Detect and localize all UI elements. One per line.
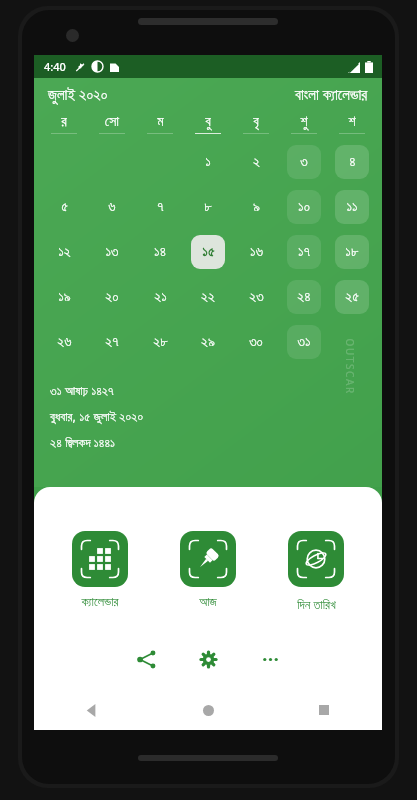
button[interactable]: ১৮ [335, 235, 369, 269]
staticText: ক্যালেন্ডার [81, 596, 119, 609]
staticText: ৬ [108, 200, 116, 214]
staticText: দিন তারিখ [297, 596, 336, 613]
staticText: ২৩ [249, 290, 264, 304]
button[interactable]: ২২ [191, 280, 225, 314]
staticText: ২৪ [297, 290, 311, 304]
button[interactable]: ২৯ [191, 325, 225, 359]
button[interactable]: Home [150, 690, 266, 730]
staticText: ২৮ [153, 335, 168, 349]
button[interactable]: ১৩ [95, 235, 129, 269]
button[interactable]: ৩ [287, 145, 321, 179]
staticText: আজ [199, 596, 217, 609]
staticText: জুলাই ২০২০ [48, 84, 108, 104]
staticText: ২২ [201, 290, 215, 304]
staticText: ২৬ [57, 335, 72, 349]
button[interactable]: ২৩ [239, 280, 273, 314]
staticText: ১৯ [58, 290, 71, 304]
staticText: ২০ [105, 290, 119, 304]
button[interactable]: Settings [190, 641, 226, 677]
staticText: বাংলা ক্যালেন্ডার [295, 84, 368, 104]
button[interactable]: ২৬ [47, 325, 81, 359]
button[interactable]: ৫ [47, 190, 81, 224]
staticText: বৃ [253, 115, 259, 129]
button[interactable]: ৬ [95, 190, 129, 224]
button[interactable]: ১৯ [47, 280, 81, 314]
button[interactable]: ক্যালেন্ডার [61, 531, 139, 609]
button[interactable]: ২৮ [143, 325, 177, 359]
button[interactable]: Recent apps [266, 690, 382, 730]
button[interactable]: আজ [169, 531, 247, 609]
staticText: ৩১ [297, 335, 311, 349]
button[interactable]: ২৭ [95, 325, 129, 359]
staticText: বু [205, 115, 211, 129]
button[interactable]: ১৫ [191, 235, 225, 269]
staticText: ১৩ [105, 245, 119, 259]
button[interactable]: ৭ [143, 190, 177, 224]
staticText: ১৫ [202, 245, 215, 259]
staticText: ৩১ আষাঢ় ১৪২৭ [50, 382, 114, 399]
button[interactable]: ১৪ [143, 235, 177, 269]
staticText: ৭ [157, 200, 164, 214]
button[interactable]: ১০ [287, 190, 321, 224]
staticText: ২৪ জ্বিলকদ ১৪৪১ [50, 434, 116, 451]
staticText: ১৭ [298, 245, 310, 259]
staticText: ৫ [61, 200, 68, 214]
button[interactable]: ২৫ [335, 280, 369, 314]
staticText: ২ [253, 155, 260, 169]
button[interactable]: ২৪ [287, 280, 321, 314]
staticText: OUTSCAR [342, 338, 356, 395]
staticText: ২১ [154, 290, 167, 304]
staticText: ২৭ [105, 335, 119, 349]
staticText: ৩ [300, 155, 308, 169]
staticText: ৯ [253, 200, 260, 214]
staticText: ম [157, 115, 164, 129]
button[interactable]: ৮ [191, 190, 225, 224]
staticText: ২৯ [201, 335, 215, 349]
button[interactable]: ১৭ [287, 235, 321, 269]
staticText: ১১ [346, 200, 358, 214]
staticText: শু [300, 115, 308, 129]
staticText: সো [105, 115, 119, 129]
button[interactable]: Share [128, 641, 164, 677]
button[interactable]: More options [252, 641, 288, 677]
button[interactable]: ৪ [335, 145, 369, 179]
button[interactable]: ১ [191, 145, 225, 179]
staticText: 4:40 [44, 59, 66, 74]
staticText: ৩০ [249, 335, 263, 349]
staticText: বুধবার, ১৫ জুলাই ২০২০ [50, 408, 144, 425]
button[interactable]: ২১ [143, 280, 177, 314]
staticText: ১৬ [250, 245, 263, 259]
button[interactable]: ১৬ [239, 235, 273, 269]
staticText: ১ [205, 155, 211, 169]
staticText: র [61, 115, 67, 129]
button[interactable]: Back [34, 690, 150, 730]
button[interactable]: দিন তারিখ [277, 531, 355, 613]
staticText: ১৪ [154, 245, 166, 259]
staticText: ৪ [349, 155, 356, 169]
staticText: ১৮ [345, 245, 359, 259]
staticText: ১০ [298, 200, 310, 214]
button[interactable]: ৩০ [239, 325, 273, 359]
button[interactable]: ২ [239, 145, 273, 179]
staticText: ১২ [58, 245, 71, 259]
staticText: ২৫ [345, 290, 359, 304]
button[interactable]: ১১ [335, 190, 369, 224]
button[interactable]: ১২ [47, 235, 81, 269]
staticText: শ [348, 115, 356, 129]
button[interactable]: ৩১ [287, 325, 321, 359]
button[interactable]: ২০ [95, 280, 129, 314]
button[interactable]: ৯ [239, 190, 273, 224]
staticText: ৮ [204, 200, 212, 214]
